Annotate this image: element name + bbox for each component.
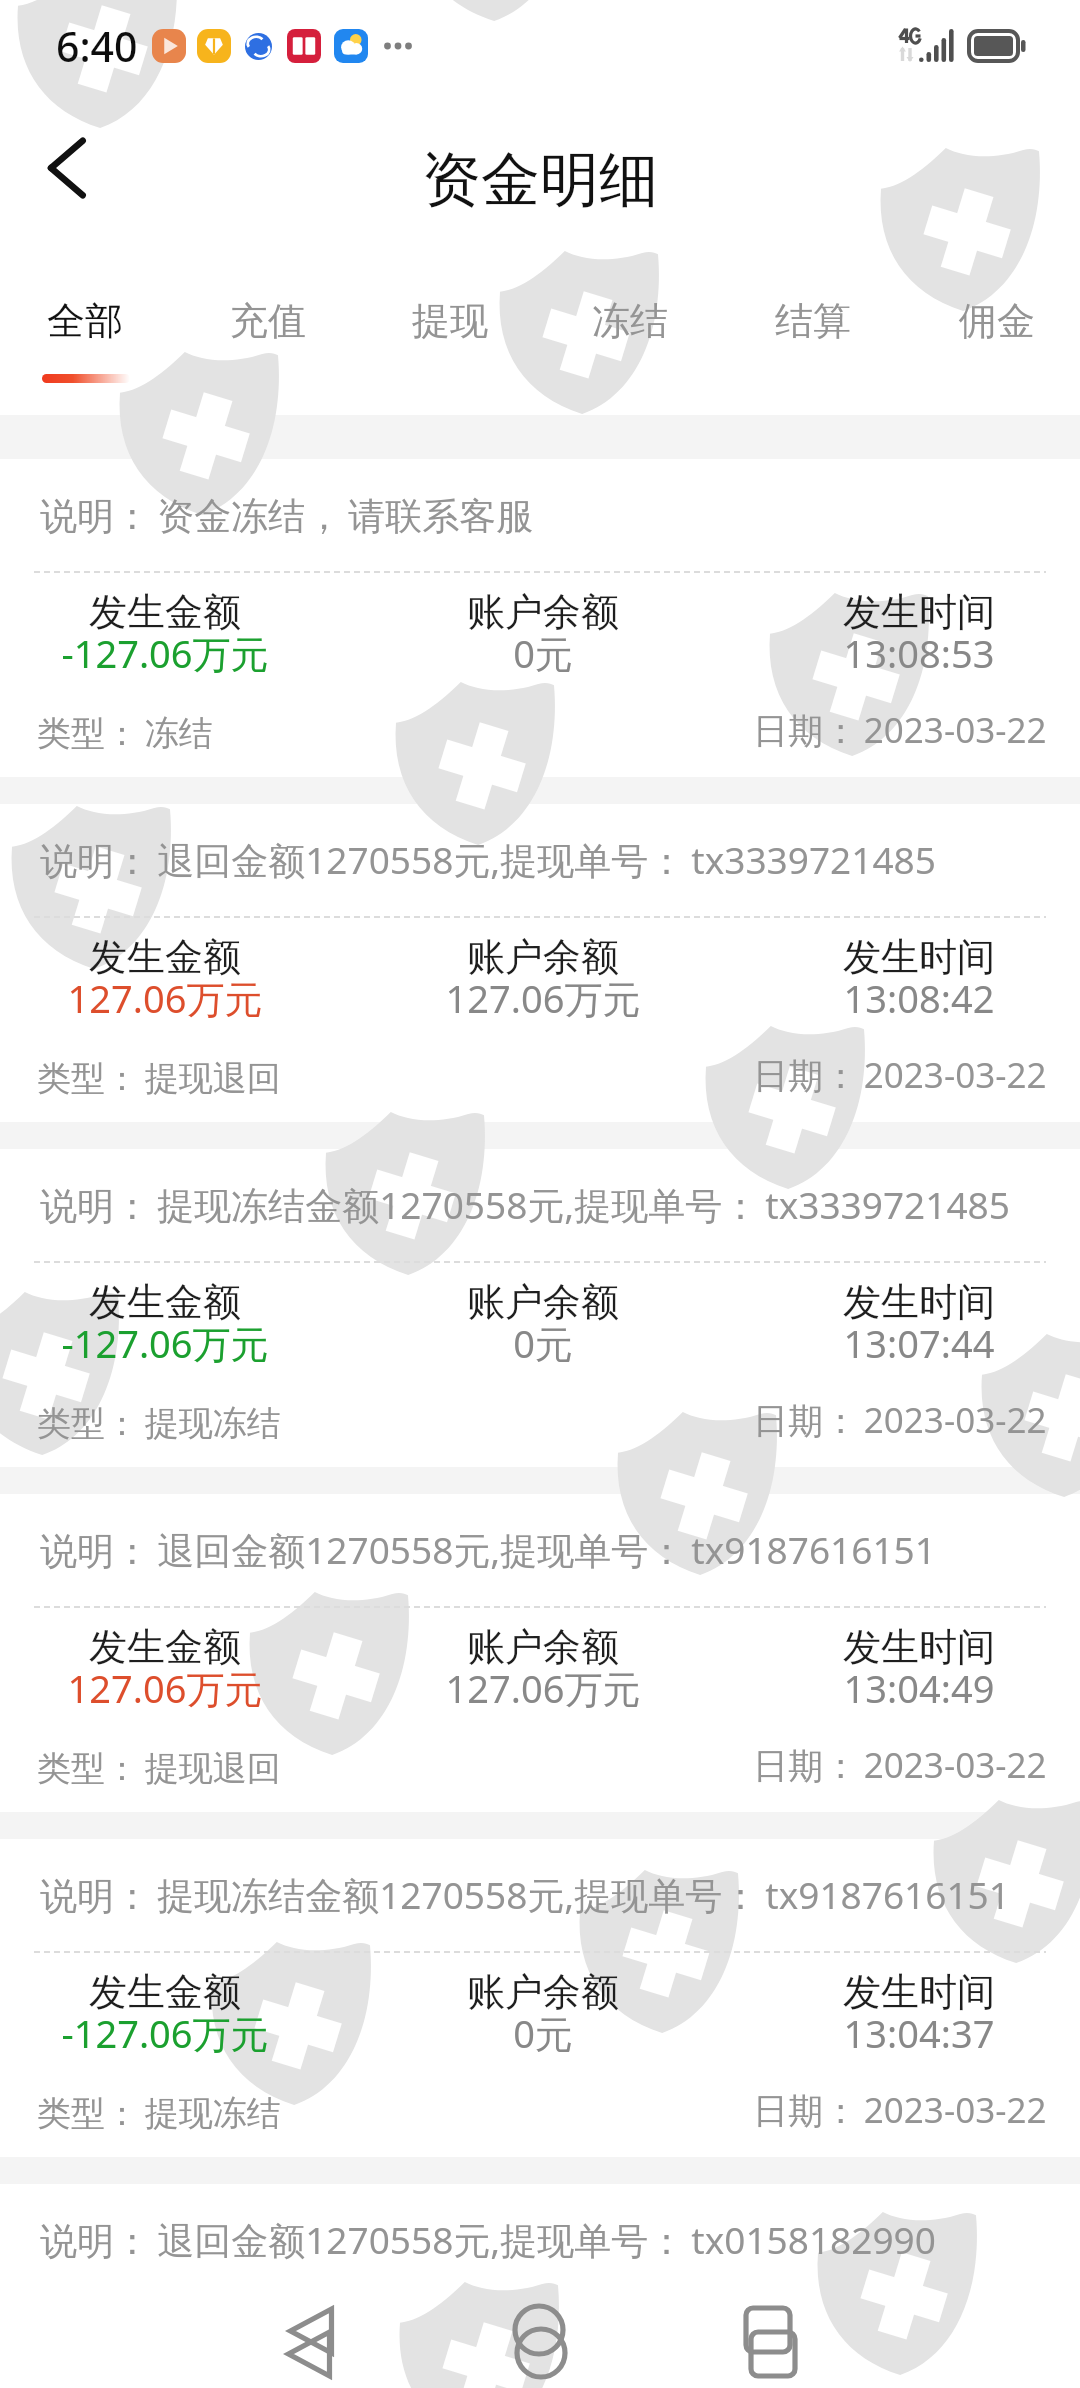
button[interactable]: 说明： 提现冻结金额1270558元,提现单号： tx3339721485 [0,1149,1080,1467]
button[interactable]: 说明： 退回金额1270558元,提现单号： tx3339721485 [0,804,1080,1122]
staticText: 日期： 2023-03-22 [753,1741,1047,1789]
staticText: -127.06万元 [0,1317,365,1369]
staticText: 日期： 2023-03-22 [753,706,1047,754]
staticText: 13:08:42 [719,972,1080,1024]
staticText: 127.06万元 [343,2352,743,2388]
staticText: 发生时间 [719,588,1080,636]
staticText: 13:04:49 [719,1662,1080,1714]
button[interactable]: 说明： 退回金额1270558元,提现单号： tx9187616151 [0,1494,1080,1812]
staticText: 类型： 提现冻结 [37,2089,281,2135]
button[interactable]: 说明： 提现冻结金额1270558元,提现单号： tx9187616151 [0,1839,1080,2157]
button[interactable]: 佣金 [906,235,1080,415]
staticText: 0元 [343,2007,743,2059]
staticText: 账户余额 [343,1623,743,1671]
staticText: 发生时间 [719,1278,1080,1326]
staticText: 发生金额 [0,1968,365,2016]
staticText: -127.06万元 [0,627,365,679]
staticText: 说明： 提现冻结金额1270558元,提现单号： tx3339721485 [40,1179,1010,1230]
staticText: 127.06万元 [343,1662,743,1714]
staticText: 结算 [722,297,904,345]
staticText: 账户余额 [343,2313,743,2361]
staticText: 账户余额 [343,1968,743,2016]
staticText: 发生时间 [719,933,1080,981]
staticText: 账户余额 [343,588,743,636]
staticText: 127.06万元 [0,972,365,1024]
button[interactable]: Back [14,113,118,223]
staticText: 类型： 提现退回 [37,1744,281,1790]
button[interactable]: 充值 [177,235,359,415]
staticText: 127.06万元 [343,972,743,1024]
staticText: 充值 [177,297,359,345]
staticText: 说明： 退回金额1270558元,提现单号： tx0158182990 [40,2214,936,2265]
staticText: 发生时间 [719,2313,1080,2361]
staticText: 127.06万元 [0,2352,365,2388]
staticText: 账户余额 [343,933,743,981]
staticText: 13:08:53 [719,627,1080,679]
button[interactable]: Back [233,2262,383,2388]
button[interactable]: Home [465,2262,615,2388]
staticText: 发生金额 [0,1623,365,1671]
button[interactable]: Recents [696,2262,846,2388]
staticText: 全部 [0,297,176,345]
staticText: 提现 [359,297,541,345]
staticText: 13:07:44 [719,1317,1080,1369]
staticText: 说明： 退回金额1270558元,提现单号： tx9187616151 [40,1524,936,1575]
staticText: 资金明细 [422,143,658,217]
staticText: 佣金 [906,297,1080,345]
button[interactable]: 说明： 退回金额1270558元,提现单号： tx0158182990 [0,2184,1080,2388]
staticText: 说明： 退回金额1270558元,提现单号： tx3339721485 [40,834,936,885]
button[interactable]: 冻结 [539,235,721,415]
staticText: 发生时间 [719,1623,1080,1671]
staticText: 冻结 [539,297,721,345]
staticText: 说明： 提现冻结金额1270558元,提现单号： tx9187616151 [40,1869,1010,1920]
staticText: 类型： 提现退回 [37,1054,281,1100]
staticText: 账户余额 [343,1278,743,1326]
staticText: 6:40 [56,18,138,74]
staticText: 日期： 2023-03-22 [753,1051,1047,1099]
staticText: 日期： 2023-03-22 [753,2086,1047,2134]
staticText: 发生时间 [719,1968,1080,2016]
button[interactable]: 结算 [722,235,904,415]
staticText: 说明： 资金冻结， 请联系客服 [40,489,534,540]
staticText: 0元 [343,1317,743,1369]
staticText: 0元 [343,627,743,679]
staticText: 13:01:20 [719,2352,1080,2388]
staticText: 13:04:37 [719,2007,1080,2059]
staticText: 类型： 提现冻结 [37,1399,281,1445]
staticText: -127.06万元 [0,2007,365,2059]
staticText: 发生金额 [0,2313,365,2361]
button[interactable]: 全部 [0,235,176,415]
staticText: 发生金额 [0,1278,365,1326]
staticText: 类型： 冻结 [37,709,213,755]
button[interactable]: 提现 [359,235,541,415]
staticText: 发生金额 [0,588,365,636]
button[interactable]: 说明： 资金冻结， 请联系客服 [0,459,1080,777]
staticText: 日期： 2023-03-22 [753,1396,1047,1444]
staticText: 发生金额 [0,933,365,981]
staticText: 127.06万元 [0,1662,365,1714]
